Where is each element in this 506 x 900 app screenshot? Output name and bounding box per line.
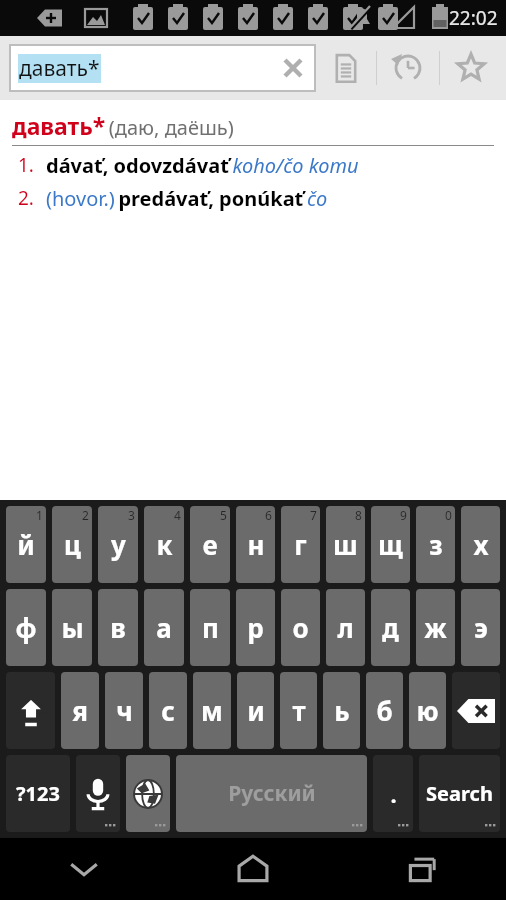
staticText: Search bbox=[426, 780, 493, 807]
staticText: я bbox=[72, 693, 88, 728]
staticText: 9 bbox=[400, 507, 407, 523]
button[interactable]: ь bbox=[323, 672, 360, 749]
button[interactable]: э bbox=[461, 589, 500, 666]
button[interactable]: Русский bbox=[176, 755, 367, 832]
staticText: л bbox=[337, 610, 354, 645]
staticText: 8 bbox=[355, 507, 362, 523]
staticText: 6 bbox=[265, 507, 272, 523]
staticText: 3 bbox=[128, 507, 135, 523]
staticText: н bbox=[247, 527, 265, 562]
staticText: к bbox=[156, 527, 173, 562]
staticText: с bbox=[161, 693, 175, 728]
button[interactable]: Backspace bbox=[452, 672, 500, 749]
staticText: й bbox=[17, 527, 35, 562]
staticText: е bbox=[202, 527, 218, 562]
staticText: 4 bbox=[174, 507, 181, 523]
staticText: 2 bbox=[82, 507, 89, 523]
button[interactable]: у bbox=[98, 506, 138, 583]
button[interactable]: в bbox=[98, 589, 138, 666]
button[interactable]: Search bbox=[419, 755, 500, 832]
staticText: э bbox=[474, 610, 488, 645]
button[interactable]: й bbox=[6, 506, 46, 583]
button[interactable]: ц bbox=[52, 506, 92, 583]
staticText: 7 bbox=[310, 507, 317, 523]
button[interactable]: . bbox=[373, 755, 413, 832]
button[interactable]: к bbox=[144, 506, 184, 583]
button[interactable]: ч bbox=[105, 672, 143, 749]
button[interactable]: р bbox=[236, 589, 275, 666]
button[interactable]: Favorites bbox=[440, 36, 502, 100]
button[interactable]: давать* bbox=[10, 45, 315, 91]
staticText: р bbox=[247, 610, 264, 645]
button[interactable]: Voice input bbox=[76, 755, 120, 832]
button[interactable]: Recents bbox=[337, 838, 506, 900]
staticText: 1. bbox=[18, 152, 46, 178]
button[interactable]: ы bbox=[52, 589, 92, 666]
button[interactable]: History bbox=[377, 36, 439, 100]
button[interactable]: ж bbox=[416, 589, 455, 666]
button[interactable]: Shift bbox=[6, 672, 55, 749]
button[interactable]: б bbox=[366, 672, 403, 749]
staticText: о bbox=[292, 610, 309, 645]
button[interactable]: ф bbox=[6, 589, 46, 666]
staticText: ь bbox=[334, 693, 350, 728]
staticText: (hovor.) predávať, ponúkať čo bbox=[46, 185, 328, 212]
button[interactable]: с bbox=[149, 672, 187, 749]
staticText: давать* (даю, даёшь) bbox=[12, 110, 234, 141]
button[interactable]: щ bbox=[371, 506, 410, 583]
staticText: м bbox=[201, 693, 223, 728]
staticText: х bbox=[473, 527, 489, 562]
button[interactable]: Dictionary list bbox=[315, 36, 376, 100]
staticText: 5 bbox=[220, 507, 227, 523]
button[interactable]: ю bbox=[409, 672, 446, 749]
button[interactable]: ш bbox=[326, 506, 365, 583]
staticText: dávať, odovzdávať koho/čo komu bbox=[46, 152, 359, 179]
button[interactable]: я bbox=[61, 672, 99, 749]
button[interactable]: и bbox=[237, 672, 274, 749]
staticText: ю bbox=[416, 693, 439, 728]
staticText: а bbox=[156, 610, 172, 645]
staticText: г bbox=[294, 527, 307, 562]
staticText: ш bbox=[333, 527, 358, 562]
staticText: д bbox=[382, 610, 399, 645]
button[interactable]: п bbox=[190, 589, 230, 666]
staticText: 22:02 bbox=[449, 5, 498, 31]
button[interactable]: з bbox=[416, 506, 455, 583]
button[interactable]: а bbox=[144, 589, 184, 666]
staticText: давать* bbox=[19, 54, 100, 83]
staticText: ?123 bbox=[16, 780, 60, 807]
staticText: ж bbox=[424, 610, 447, 645]
button[interactable]: д bbox=[371, 589, 410, 666]
button[interactable]: н bbox=[236, 506, 275, 583]
button[interactable]: Home bbox=[168, 838, 337, 900]
staticText: у bbox=[111, 527, 126, 562]
button[interactable]: Back bbox=[0, 838, 168, 900]
button[interactable]: о bbox=[281, 589, 320, 666]
staticText: и bbox=[247, 693, 265, 728]
staticText: ч bbox=[116, 693, 133, 728]
staticText: в bbox=[110, 610, 126, 645]
staticText: 2. bbox=[18, 185, 46, 211]
staticText: 0 bbox=[445, 507, 452, 523]
staticText: 1 bbox=[36, 507, 43, 523]
staticText: Русский bbox=[228, 779, 316, 808]
staticText: т bbox=[292, 693, 306, 728]
button[interactable]: л bbox=[326, 589, 365, 666]
staticText: ф bbox=[15, 610, 37, 645]
staticText: з bbox=[429, 527, 443, 562]
button[interactable]: Change language bbox=[126, 755, 170, 832]
button[interactable]: ?123 bbox=[6, 755, 70, 832]
staticText: ы bbox=[61, 610, 84, 645]
button[interactable]: м bbox=[193, 672, 231, 749]
staticText: п bbox=[202, 610, 219, 645]
staticText: ц bbox=[64, 527, 81, 562]
staticText: б bbox=[376, 693, 393, 728]
staticText: щ bbox=[378, 527, 403, 562]
button[interactable]: т bbox=[280, 672, 317, 749]
button[interactable]: х bbox=[461, 506, 500, 583]
button[interactable]: е bbox=[190, 506, 230, 583]
button[interactable]: г bbox=[281, 506, 320, 583]
staticText: . bbox=[390, 779, 397, 809]
